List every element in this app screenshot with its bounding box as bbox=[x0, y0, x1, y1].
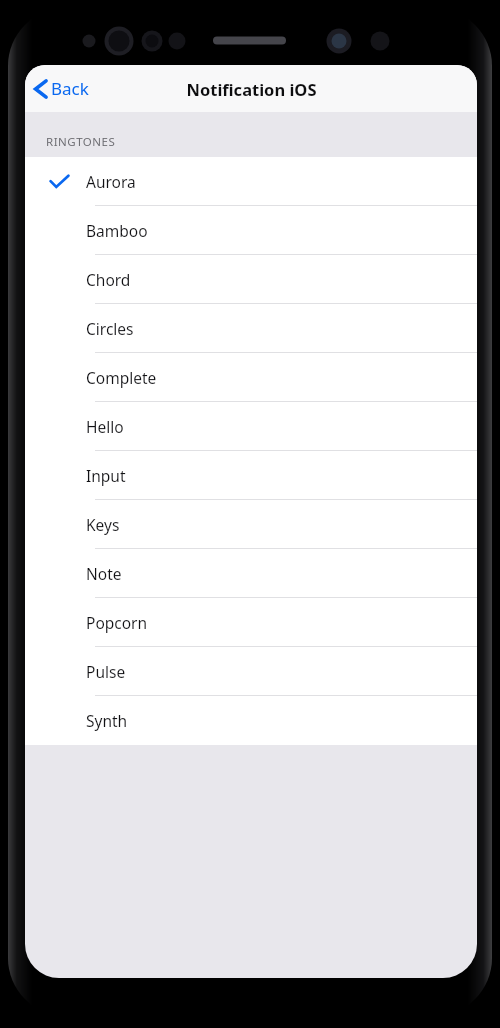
button[interactable]: Keys bbox=[25, 500, 477, 549]
staticText: Keys bbox=[86, 514, 120, 535]
staticText: Hello bbox=[86, 416, 124, 437]
button[interactable]: Selected bbox=[25, 157, 477, 206]
staticText: Popcorn bbox=[86, 612, 148, 633]
button[interactable]: Bamboo bbox=[25, 206, 477, 255]
staticText: Back bbox=[51, 77, 89, 100]
staticText: Notification iOS bbox=[186, 78, 317, 100]
button[interactable]: Circles bbox=[25, 304, 477, 353]
staticText: Chord bbox=[86, 269, 131, 290]
staticText: Input bbox=[86, 465, 126, 486]
staticText: Circles bbox=[86, 318, 134, 339]
button[interactable]: Chord bbox=[25, 255, 477, 304]
button[interactable]: Popcorn bbox=[25, 598, 477, 647]
other: Selected bbox=[50, 175, 69, 189]
staticText: RINGTONES bbox=[46, 134, 116, 150]
staticText: Aurora bbox=[86, 171, 136, 192]
button[interactable]: Pulse bbox=[25, 647, 477, 696]
staticText: Note bbox=[86, 563, 122, 584]
staticText: Pulse bbox=[86, 661, 126, 682]
button[interactable]: Note bbox=[25, 549, 477, 598]
button[interactable]: Synth bbox=[25, 696, 477, 745]
staticText: Bamboo bbox=[86, 220, 148, 241]
staticText: Synth bbox=[86, 710, 128, 731]
button[interactable]: Hello bbox=[25, 402, 477, 451]
button[interactable]: Back bbox=[25, 69, 101, 108]
button[interactable]: Input bbox=[25, 451, 477, 500]
staticText: Complete bbox=[86, 367, 157, 388]
button[interactable]: Complete bbox=[25, 353, 477, 402]
